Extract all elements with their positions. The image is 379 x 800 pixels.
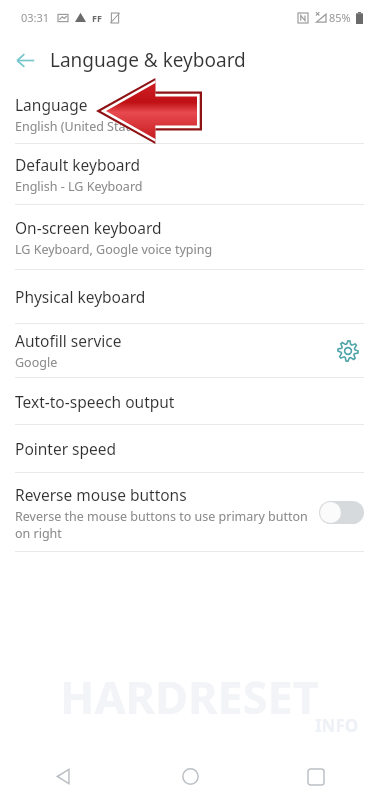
staticText: Autofill service xyxy=(15,330,122,351)
button[interactable]: Reverse mouse buttons xyxy=(317,497,365,527)
button[interactable]: Default keyboard xyxy=(0,144,379,204)
staticText: Text-to-speech output xyxy=(15,391,175,412)
staticText: FF xyxy=(92,12,102,24)
staticText: English - LG Keyboard xyxy=(15,178,143,195)
staticText: Default keyboard xyxy=(15,154,141,175)
staticText: Google xyxy=(15,354,58,371)
staticText: Reverse mouse buttons xyxy=(15,484,187,505)
staticText: INFO xyxy=(315,714,359,737)
button[interactable]: Reverse mouse buttons xyxy=(0,473,379,551)
staticText: HARDRESET xyxy=(60,666,319,727)
staticText: On-screen keyboard xyxy=(15,217,162,238)
staticText: English (United States) xyxy=(15,118,147,135)
button[interactable]: Pointer speed xyxy=(0,425,379,472)
button[interactable]: Text-to-speech output xyxy=(0,378,379,424)
button[interactable]: On-screen keyboard xyxy=(0,205,379,269)
button[interactable]: Physical keyboard xyxy=(0,270,379,323)
staticText: LG Keyboard, Google voice typing xyxy=(15,241,213,258)
button[interactable]: Back xyxy=(4,39,46,81)
staticText: Physical keyboard xyxy=(15,286,146,307)
staticText: 85% xyxy=(329,10,351,25)
staticText: Pointer speed xyxy=(15,438,117,459)
button[interactable]: Back xyxy=(0,753,127,800)
staticText: Language & keyboard xyxy=(50,47,246,73)
staticText: 03:31 xyxy=(21,10,50,25)
staticText: Reverse the mouse buttons to use primary… xyxy=(15,508,311,541)
button[interactable]: Recent apps xyxy=(253,753,379,800)
button[interactable]: Autofill service xyxy=(0,324,379,377)
button[interactable]: Home xyxy=(127,753,253,800)
button[interactable]: Language xyxy=(0,85,379,143)
button[interactable]: Autofill service settings xyxy=(329,332,367,370)
staticText: Language xyxy=(15,94,88,115)
